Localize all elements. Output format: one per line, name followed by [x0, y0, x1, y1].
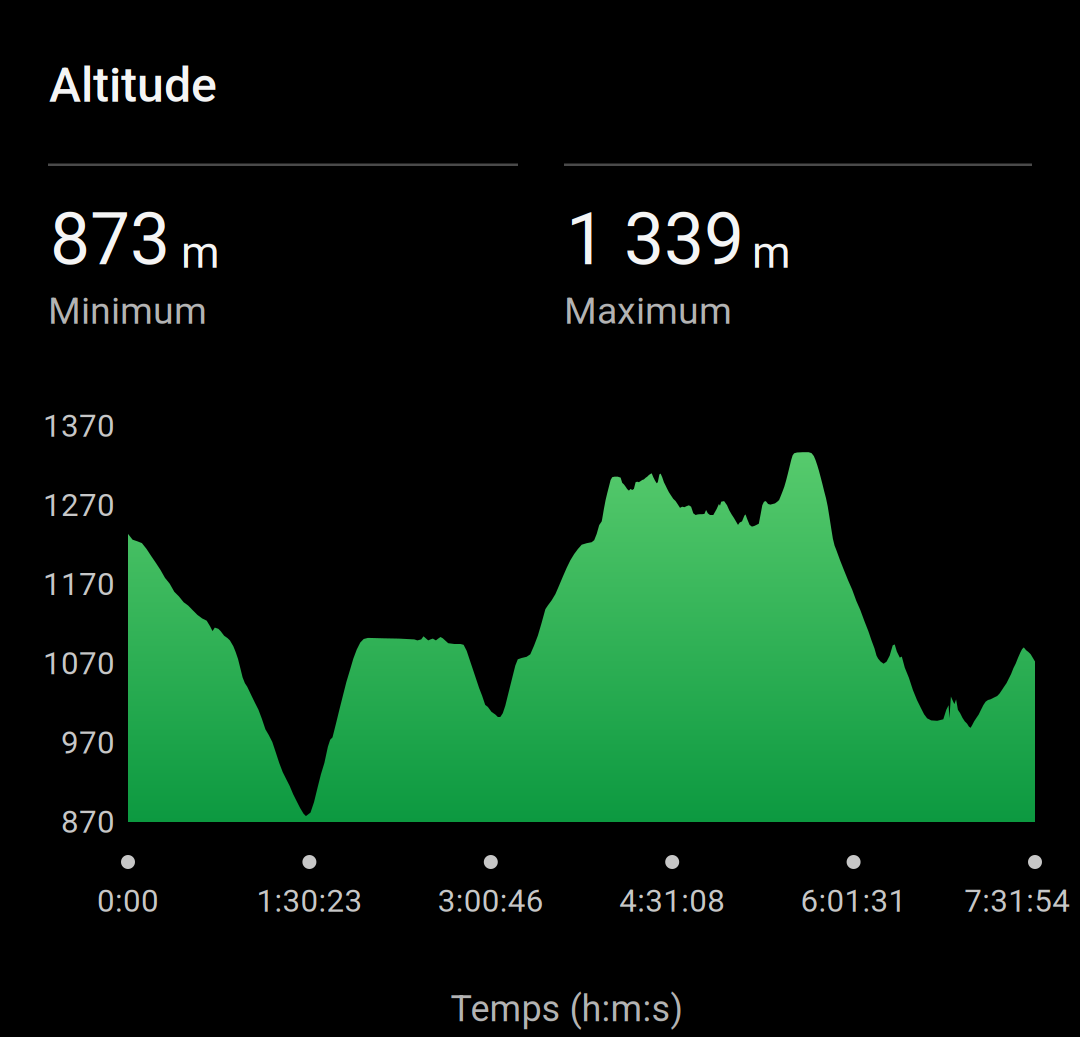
staticText: Temps (h:m:s) — [450, 988, 683, 1030]
staticText: 6:01:31 — [801, 883, 907, 919]
staticText: 873 — [50, 198, 170, 282]
staticText: m — [752, 227, 791, 279]
staticText: Maximum — [564, 289, 732, 333]
staticText: 1070 — [43, 645, 115, 682]
staticText: 4:31:08 — [619, 883, 725, 919]
staticText: 1270 — [43, 487, 115, 523]
staticText: 1 339 — [566, 198, 744, 282]
staticText: 1170 — [43, 566, 115, 603]
staticText: 1370 — [43, 408, 115, 444]
staticText: m — [181, 227, 220, 279]
staticText: Altitude — [49, 57, 217, 114]
staticText: Minimum — [48, 289, 207, 333]
staticText: 0:00 — [97, 883, 159, 919]
staticText: 3:00:46 — [438, 883, 544, 919]
staticText: 7:31:54 — [964, 883, 1070, 919]
staticText: 1:30:23 — [256, 883, 362, 919]
staticText: 870 — [61, 804, 115, 840]
staticText: 970 — [61, 724, 115, 761]
